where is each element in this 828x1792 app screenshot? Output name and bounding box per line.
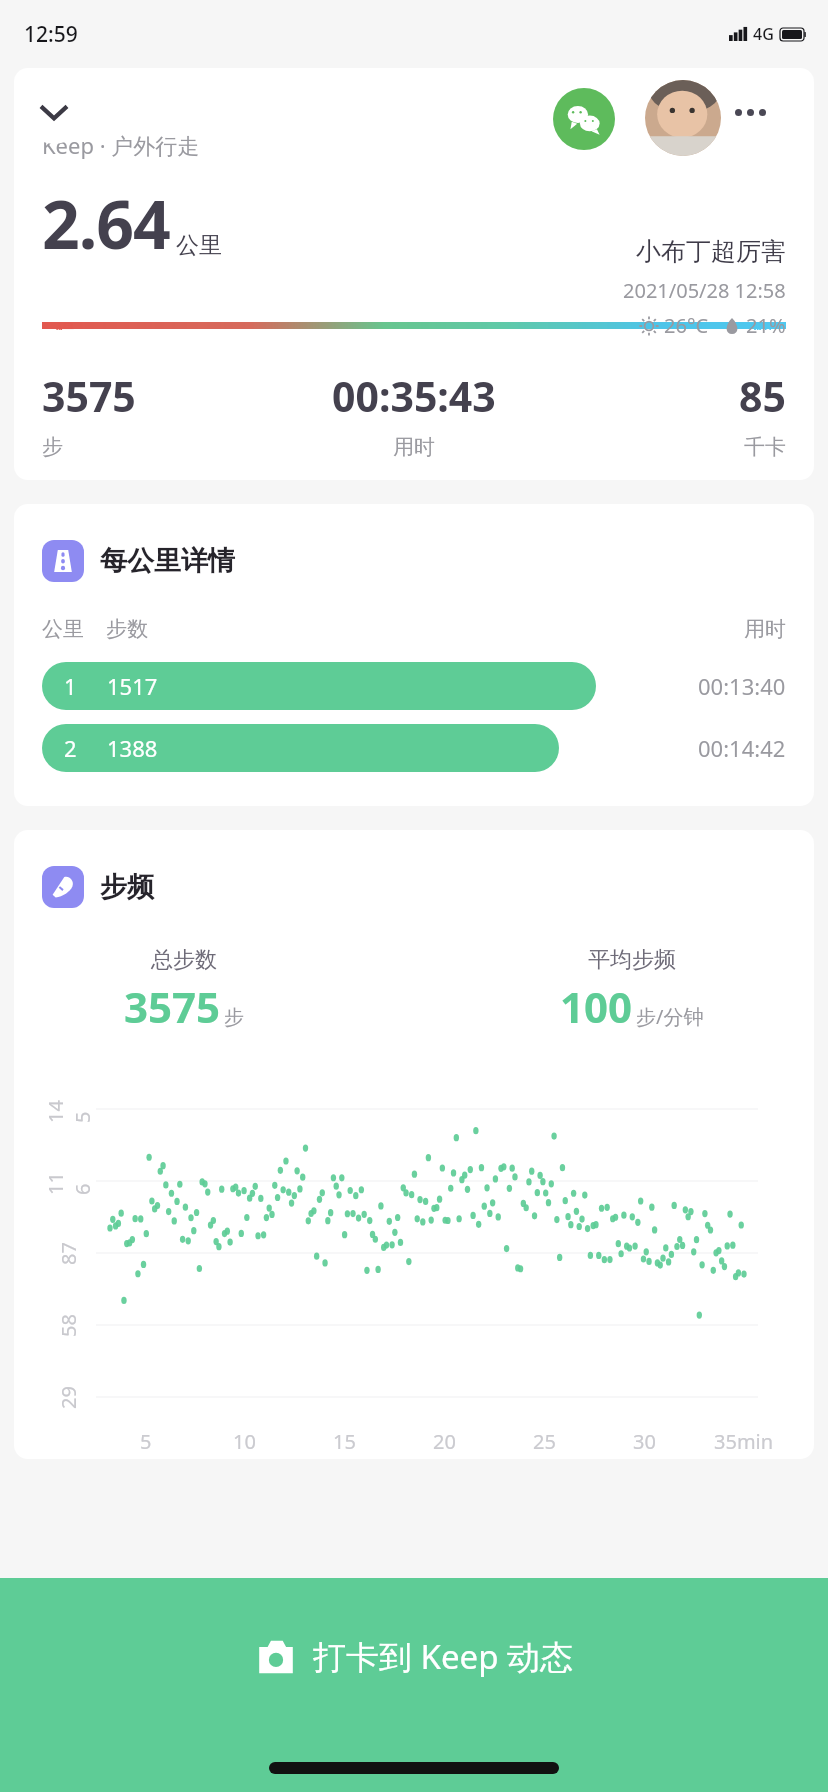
staticText: 步数 (106, 616, 148, 642)
staticText: 85 (739, 368, 786, 424)
staticText: 步 (42, 434, 63, 460)
staticText: 00:14:42 (698, 733, 786, 763)
button[interactable]: 2 (42, 724, 786, 772)
staticText: 平均步频 (588, 946, 676, 974)
staticText: 12:59 (24, 20, 78, 49)
staticText: 2 (64, 733, 77, 763)
staticText: 用时 (393, 434, 435, 460)
staticText: 1388 (107, 733, 158, 763)
staticText: 步/分钟 (636, 1003, 704, 1030)
staticText: 快 (754, 320, 774, 330)
staticText: 00:35:43 (332, 368, 496, 424)
staticText: 用时 (744, 616, 786, 642)
staticText: 2021/05/28 12:58 (623, 277, 786, 304)
staticText: Keep · 户外行走 (42, 130, 200, 160)
staticText: 5 (140, 1428, 152, 1455)
staticText: 15 (333, 1428, 356, 1455)
staticText: 步频 (100, 870, 154, 904)
staticText: 每公里详情 (100, 544, 235, 578)
button[interactable]: User avatar (645, 80, 721, 156)
staticText: 87 (55, 1242, 82, 1265)
button[interactable]: Share to WeChat (553, 88, 615, 150)
staticText: 100 (560, 978, 633, 1035)
staticText: 10 (233, 1428, 256, 1455)
staticText: 25 (533, 1428, 556, 1455)
staticText: 慢 (56, 320, 76, 330)
staticText: 3575 (42, 368, 136, 424)
button[interactable]: 打卡到 Keep 动态 (0, 1578, 828, 1792)
staticText: 26°C (664, 312, 709, 339)
staticText: 步 (224, 1005, 244, 1030)
staticText: 4G (753, 23, 774, 45)
staticText: 116 (42, 1167, 94, 1195)
staticText: 1517 (107, 671, 158, 701)
staticText: 21% (746, 312, 786, 339)
staticText: 30 (633, 1428, 656, 1455)
staticText: 00:13:40 (698, 671, 786, 701)
staticText: 35min (714, 1428, 774, 1455)
staticText: 29 (55, 1386, 82, 1409)
button[interactable]: 1 (42, 662, 786, 710)
staticText: 公里 (42, 616, 84, 642)
staticText: 公里 (176, 231, 222, 260)
staticText: 打卡到 Keep 动态 (313, 1634, 574, 1679)
staticText: 总步数 (151, 946, 217, 974)
staticText: 3575 (124, 978, 221, 1035)
staticText: 2.64 (42, 178, 170, 268)
staticText: 千卡 (744, 434, 786, 460)
staticText: 1 (64, 671, 77, 701)
staticText: 58 (55, 1314, 82, 1337)
staticText: 20 (433, 1428, 456, 1455)
button[interactable]: Collapse (22, 80, 86, 144)
button[interactable]: More options (718, 80, 782, 144)
staticText: 小布丁超厉害 (636, 236, 786, 267)
staticText: 145 (42, 1095, 94, 1123)
